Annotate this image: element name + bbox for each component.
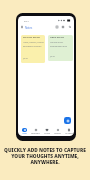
staticText: 9:41: [24, 19, 29, 22]
button[interactable]: Reminders: [30, 128, 41, 134]
button[interactable]: My Space: [63, 128, 74, 134]
staticText: Archive: [44, 132, 50, 134]
staticText: Jan 22: [50, 55, 55, 57]
staticText: My Space: [65, 132, 73, 134]
staticText: Jan 24: [23, 57, 28, 59]
button[interactable]: Personal Details: [21, 35, 45, 63]
staticText: Reminders: [31, 132, 40, 134]
staticText: ANYWHERE.: [30, 159, 60, 166]
staticText: Notes: [22, 132, 27, 134]
button[interactable]: Create new note: [64, 117, 71, 124]
button[interactable]: Open navigation menu: [20, 25, 24, 29]
staticText: Development team: [50, 45, 67, 48]
staticText: Working hours: [50, 41, 64, 44]
staticText: Notes: [25, 26, 33, 30]
staticText: Emergency numbers: [23, 45, 42, 48]
button[interactable]: Office Details: [48, 35, 73, 61]
staticText: Name, address, contact: [23, 41, 44, 44]
staticText: Settings: [54, 132, 61, 134]
staticText: QUICKLY ADD NOTES TO CAPTURE: [4, 147, 86, 154]
button[interactable]: Toggle list layout: [55, 25, 58, 28]
staticText: YOUR THOUGHTS ANYTIME,: [11, 153, 79, 160]
button[interactable]: Notes: [18, 128, 30, 134]
button[interactable]: Search notes: [61, 25, 64, 28]
button[interactable]: Archive: [41, 128, 52, 134]
staticText: Office Details: [50, 36, 64, 39]
button[interactable]: Account: [68, 25, 71, 28]
button[interactable]: Settings: [52, 128, 63, 134]
staticText: Personal Details: [23, 36, 40, 39]
